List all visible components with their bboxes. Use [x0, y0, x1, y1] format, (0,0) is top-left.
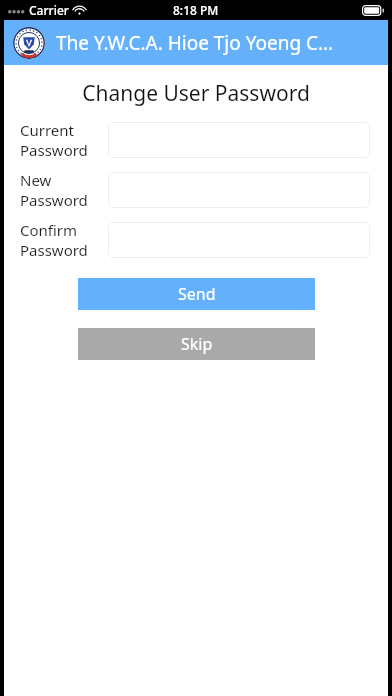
button[interactable]: Confirm Password input — [108, 222, 370, 258]
staticText: Change User Password — [4, 79, 388, 108]
staticText: Password — [20, 140, 88, 160]
staticText: 8:18 PM — [173, 2, 219, 18]
staticText: Carrier — [29, 2, 69, 18]
staticText: Send — [178, 283, 216, 305]
staticText: Skip — [181, 333, 213, 355]
staticText: Password — [20, 240, 88, 260]
button[interactable]: New Password input — [108, 172, 370, 208]
button[interactable]: Send — [78, 278, 315, 310]
button[interactable]: Skip — [78, 328, 315, 360]
staticText: New — [20, 170, 52, 190]
staticText: Password — [20, 190, 88, 210]
staticText: Confirm — [20, 220, 78, 240]
other: School crest — [13, 27, 45, 59]
button[interactable]: Current Password input — [108, 122, 370, 158]
staticText: Current — [20, 120, 74, 140]
staticText: The Y.W.C.A. Hioe Tjo Yoeng C… — [56, 30, 334, 56]
